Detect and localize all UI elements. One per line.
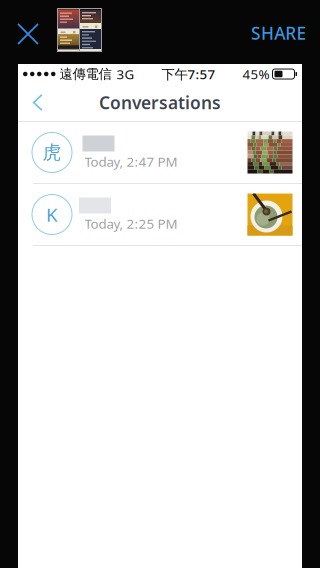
staticText: Conversations — [99, 91, 221, 114]
button[interactable]: Preview attachment — [57, 8, 102, 52]
staticText: 下午7:57 — [161, 65, 215, 83]
button[interactable]: 虎 — [18, 122, 302, 183]
staticText: 3G — [116, 65, 134, 83]
staticText: 虎 — [42, 141, 61, 164]
button[interactable]: K — [18, 184, 302, 245]
button[interactable]: Back — [18, 84, 58, 121]
button[interactable]: Close — [6, 12, 50, 56]
staticText: SHARE — [251, 21, 306, 44]
staticText: Today, 2:47 PM — [84, 153, 177, 170]
staticText: Today, 2:25 PM — [84, 215, 177, 232]
staticText: K — [46, 202, 58, 227]
button[interactable]: SHARE — [241, 13, 319, 53]
staticText: 45% — [242, 65, 269, 83]
staticText: 遠傳電信 — [59, 66, 111, 82]
